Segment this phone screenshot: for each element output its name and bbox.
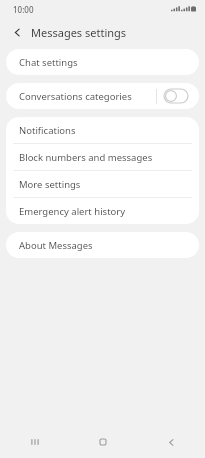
button[interactable]: More settings — [6, 171, 199, 197]
button[interactable]: About Messages — [6, 232, 199, 258]
staticText: More settings — [19, 178, 81, 191]
button[interactable]: Block numbers and messages — [6, 144, 199, 170]
staticText: About Messages — [19, 239, 93, 252]
staticText: Chat settings — [19, 56, 78, 69]
staticText: Messages settings — [31, 25, 127, 40]
button[interactable]: Chat settings — [6, 49, 199, 75]
button[interactable]: Back — [7, 22, 27, 42]
button[interactable]: Home — [69, 426, 137, 458]
staticText: 10:00 — [13, 4, 34, 15]
button[interactable]: Notifications — [6, 117, 199, 143]
staticText: Block numbers and messages — [19, 151, 153, 164]
button[interactable]: Recents — [0, 426, 69, 458]
button[interactable]: Conversations categories — [6, 83, 199, 109]
staticText: Emergency alert history — [19, 205, 126, 218]
staticText: Notifications — [19, 124, 76, 137]
button[interactable]: Emergency alert history — [6, 198, 199, 224]
button[interactable]: Conversations categories — [164, 89, 188, 103]
button[interactable]: Back — [137, 426, 205, 458]
staticText: Conversations categories — [19, 90, 156, 103]
